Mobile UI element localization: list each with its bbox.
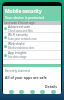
staticText: Recently scanned xyxy=(5,69,30,73)
staticText: Check apps and files xyxy=(8,29,33,32)
button[interactable]: Wi-Fi security xyxy=(3,33,61,41)
staticText: Blocks malicious sites xyxy=(8,46,35,50)
staticText: Advanced scan xyxy=(8,25,31,29)
staticText: Wi-Fi security xyxy=(8,33,28,37)
button[interactable]: Advanced scan xyxy=(3,25,61,32)
button[interactable]: Tab 3 xyxy=(30,90,35,94)
button[interactable]: Tab 2 xyxy=(19,90,24,94)
button[interactable]: Tab 5 xyxy=(51,90,56,94)
button[interactable]: App insights xyxy=(3,51,61,59)
staticText: App insights xyxy=(8,51,27,55)
button[interactable]: Tab 1 xyxy=(9,90,14,94)
staticText: All of your apps are safe xyxy=(5,75,47,80)
staticText: Last scan 2 hours ago xyxy=(4,21,35,25)
staticText: Scan your network now xyxy=(8,37,37,41)
staticText: Web shield xyxy=(8,42,25,46)
button[interactable]: Web shield xyxy=(3,42,61,50)
staticText: Mobile security xyxy=(5,8,42,15)
button[interactable]: Tab 4 xyxy=(40,90,45,94)
staticText: See data usage xyxy=(8,55,27,59)
staticText: Details xyxy=(45,84,58,89)
button[interactable]: Details xyxy=(44,84,59,89)
staticText: Your device is protected xyxy=(5,15,45,20)
